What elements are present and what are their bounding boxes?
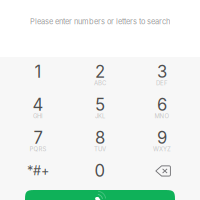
staticText: 0 bbox=[94, 160, 105, 181]
button[interactable]: Delete bbox=[131, 158, 193, 191]
staticText: 9 bbox=[157, 127, 167, 148]
button[interactable]: Call bbox=[25, 190, 175, 200]
staticText: 8 bbox=[95, 127, 105, 148]
staticText: 6 bbox=[157, 94, 167, 115]
staticText: 2 bbox=[95, 61, 105, 82]
staticText: DEF bbox=[156, 79, 168, 87]
button[interactable]: 1 bbox=[7, 59, 69, 92]
staticText: TUV bbox=[94, 145, 106, 153]
button[interactable]: 9 bbox=[131, 125, 193, 158]
staticText: 5 bbox=[95, 94, 105, 115]
button[interactable]: 4 bbox=[7, 92, 69, 125]
staticText: *#+ bbox=[27, 163, 49, 178]
button[interactable]: 0 bbox=[69, 158, 131, 191]
staticText: 3 bbox=[157, 61, 167, 82]
button[interactable]: *#+ bbox=[7, 158, 69, 191]
staticText: ABC bbox=[94, 79, 106, 87]
button[interactable]: 7 bbox=[7, 125, 69, 158]
staticText: JKL bbox=[95, 112, 105, 120]
button[interactable]: 5 bbox=[69, 92, 131, 125]
staticText: Please enter numbers or letters to searc… bbox=[30, 17, 170, 26]
button[interactable]: 2 bbox=[69, 59, 131, 92]
button[interactable]: 6 bbox=[131, 92, 193, 125]
staticText: GHI bbox=[33, 112, 43, 120]
staticText: WXYZ bbox=[153, 145, 171, 153]
staticText: 4 bbox=[32, 94, 43, 115]
staticText: 7 bbox=[33, 127, 42, 148]
button[interactable]: 3 bbox=[131, 59, 193, 92]
staticText: 1 bbox=[34, 61, 41, 82]
staticText: MNO bbox=[154, 112, 169, 120]
staticText: PQRS bbox=[29, 145, 46, 153]
button[interactable]: 8 bbox=[69, 125, 131, 158]
